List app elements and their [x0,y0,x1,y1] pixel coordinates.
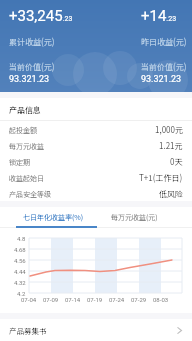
staticText: 产品募集书 [9,325,47,336]
staticText: 产品安全等级 [9,189,51,199]
staticText: 每万元收益 [9,141,44,151]
staticText: 当前价值(元) [141,61,187,73]
staticText: 4.44 [14,268,26,275]
button[interactable]: 七日年化收益率(%) [13,207,94,227]
staticText: 08-03 [153,296,169,303]
staticText: 07-24 [109,296,125,303]
staticText: 07-14 [65,296,81,303]
button[interactable]: 产品募集书 [0,319,192,341]
staticText: 收益起始日 [9,173,44,183]
staticText: 4.32 [14,279,26,286]
staticText: 产品信息 [9,104,41,116]
staticText: 07-09 [43,296,59,303]
staticText: 七日年化收益率(%) [23,212,84,222]
staticText: +33,245.23 [9,7,73,25]
staticText: 当前价值(元) [9,61,55,73]
staticText: +14.23 [141,7,177,25]
staticText: 昨日收益(元) [141,36,187,48]
staticText: 4.56 [14,257,26,264]
button[interactable]: 每万元收益(元) [94,207,175,227]
staticText: 低风险 [159,188,183,200]
staticText: 0天 [170,156,183,168]
staticText: 93.321.23 [141,74,182,85]
staticText: 07-29 [131,296,147,303]
staticText: 4.2 [17,290,26,297]
staticText: T+1(工作日) [139,172,183,184]
staticText: 07-19 [87,296,103,303]
staticText: 07-04 [21,296,37,303]
staticText: 起投金额 [9,125,37,135]
staticText: 累计收益(元) [9,36,55,48]
staticText: 每万元收益(元) [111,212,158,222]
staticText: 93.321.23 [9,74,50,85]
staticText: 4.68 [14,246,26,253]
staticText: 锁定期 [9,157,30,167]
staticText: 4.8 [17,235,26,242]
staticText: 1,000元 [155,124,183,136]
staticText: 1.21元 [159,140,183,152]
